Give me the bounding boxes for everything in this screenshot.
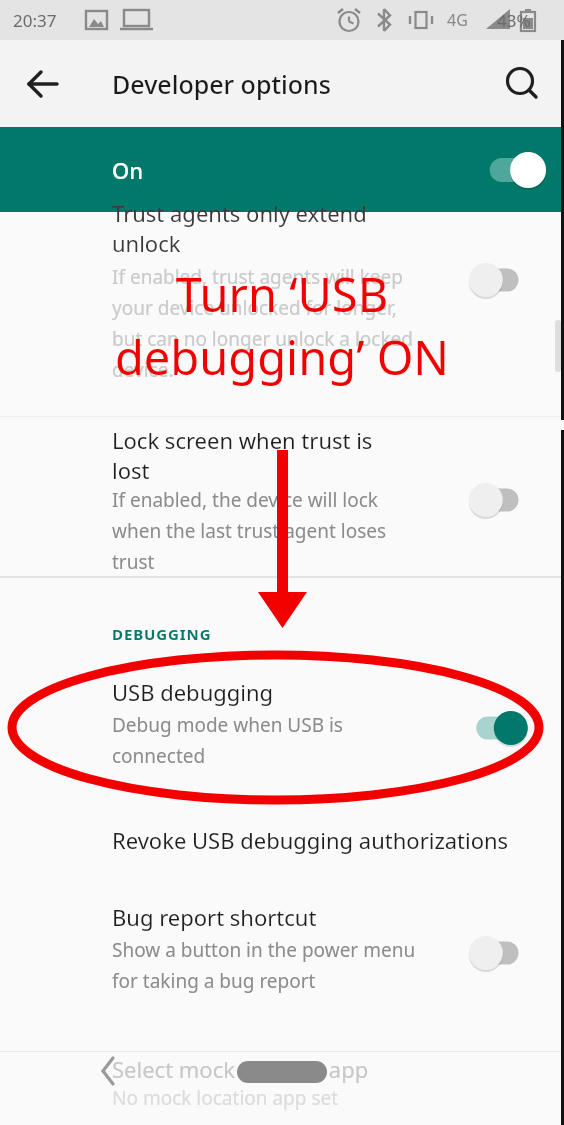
staticText: 43%	[497, 9, 531, 32]
staticText: Show a button in the power menu for taki…	[112, 937, 416, 994]
button[interactable]: Trust agents only extend unlock	[0, 212, 564, 416]
button[interactable]: Lock screen when trust is lost	[0, 417, 564, 576]
button[interactable]: Select mock location app	[0, 1052, 564, 1125]
staticText: No mock location app set	[112, 1085, 339, 1111]
staticText: Lock screen when trust is lost	[112, 425, 373, 486]
staticText: Revoke USB debugging authorizations	[112, 825, 509, 855]
staticText: 20:37	[13, 9, 57, 32]
staticText: USB debugging	[112, 677, 274, 707]
staticText: Developer options	[112, 67, 331, 101]
staticText: Trust agents only extend unlock	[112, 198, 367, 258]
staticText: On	[112, 155, 144, 185]
button[interactable]: Home	[222, 1065, 342, 1125]
staticText: Debug mode when USB is connected	[112, 712, 343, 769]
staticText: If enabled, the device will lock when th…	[112, 487, 387, 575]
staticText: Turn ‘USB debugging’ ON	[0, 262, 564, 388]
staticText: Bug report shortcut	[112, 902, 317, 932]
button[interactable]: Bug report shortcut	[0, 892, 564, 1022]
button[interactable]: Back	[14, 55, 72, 113]
button[interactable]: Search	[494, 56, 550, 112]
staticText: Select mock location app	[112, 1054, 369, 1084]
staticText: 4G	[447, 9, 468, 31]
button[interactable]: USB debugging	[0, 665, 564, 805]
staticText: DEBUGGING	[112, 624, 212, 644]
button[interactable]: Revoke USB debugging authorizations	[0, 805, 564, 877]
staticText: If enabled, trust agents will keep your …	[112, 264, 413, 383]
button[interactable]: Back	[78, 1065, 138, 1125]
button[interactable]: On	[0, 127, 564, 212]
